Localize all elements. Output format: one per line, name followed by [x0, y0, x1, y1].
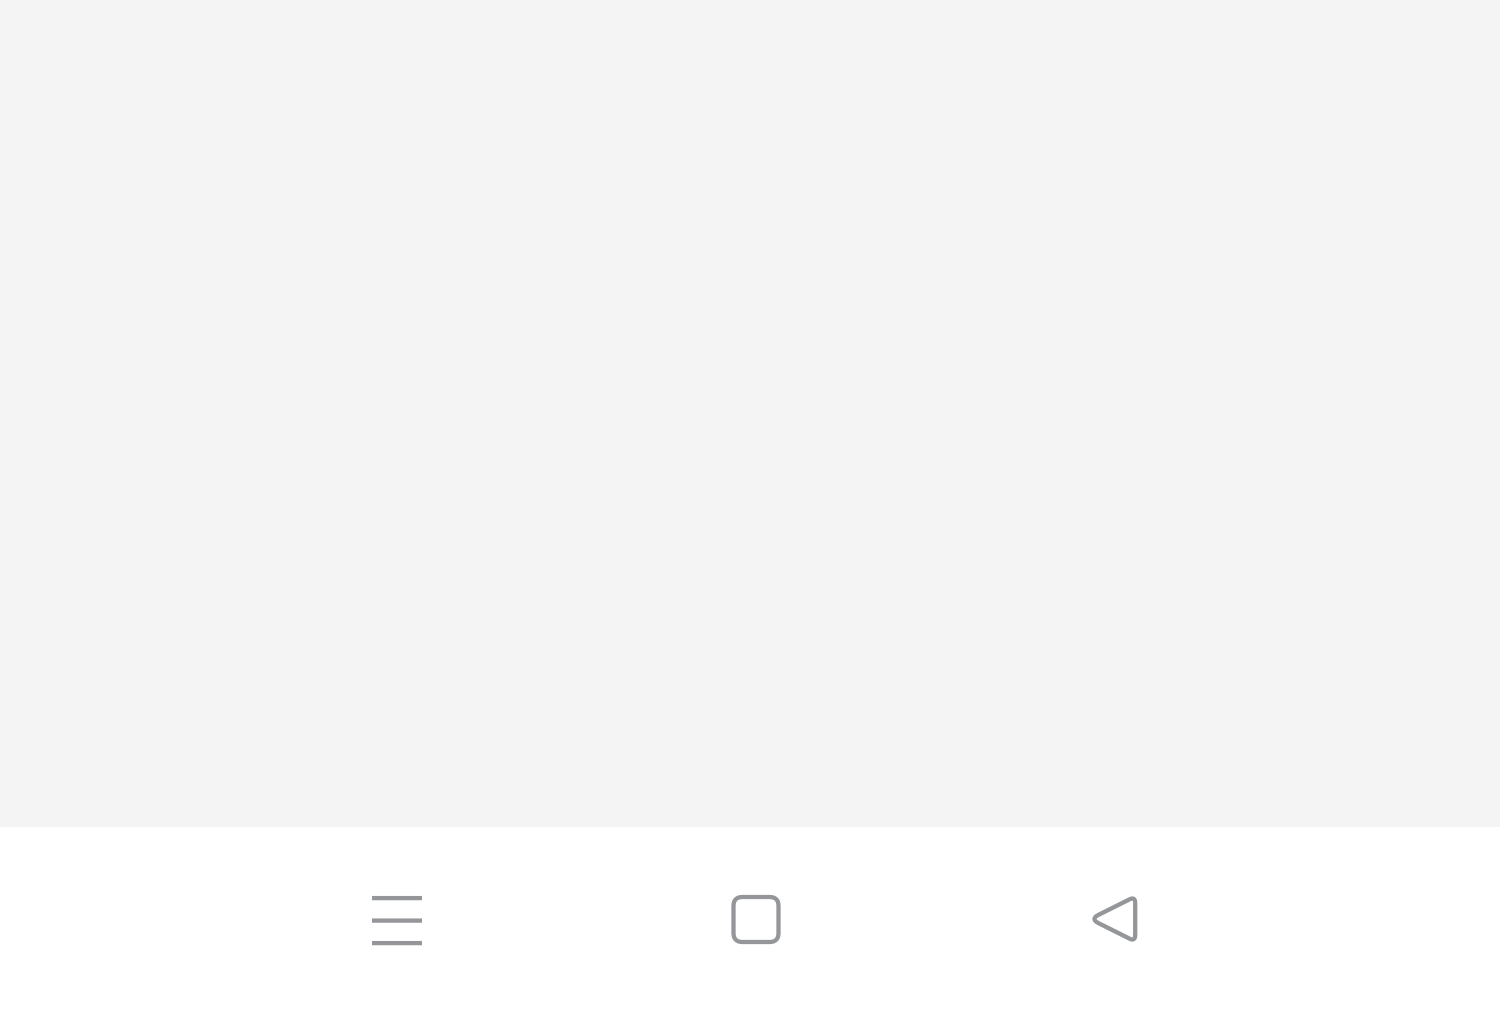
button[interactable]: Home [576, 827, 934, 1011]
button[interactable]: Recent apps [218, 827, 576, 1011]
button[interactable]: Back [934, 827, 1292, 1011]
